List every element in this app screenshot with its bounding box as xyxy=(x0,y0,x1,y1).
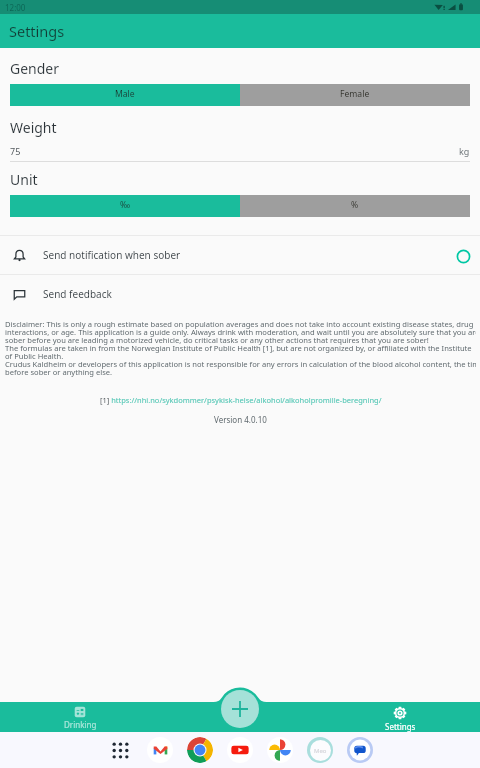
button[interactable]: Gmail xyxy=(147,737,173,763)
button[interactable]: [1] https://nhi.no/sykdommer/psykisk-hel… xyxy=(100,395,382,405)
button[interactable]: Settings xyxy=(364,702,436,732)
staticText: Send feedback xyxy=(43,287,112,301)
button[interactable]: ‰ xyxy=(10,195,240,217)
staticText: Drinking xyxy=(64,719,97,730)
staticText: Version 4.0.10 xyxy=(214,414,267,425)
staticText: Settings xyxy=(385,721,416,732)
staticText: Meo xyxy=(314,747,327,755)
staticText: ‰ xyxy=(120,199,131,211)
staticText: Weight xyxy=(10,118,57,137)
button[interactable]: Drinking xyxy=(44,702,116,732)
button[interactable]: Chrome xyxy=(187,737,213,763)
staticText: kg xyxy=(459,145,470,157)
button[interactable]: Photos xyxy=(267,737,293,763)
button[interactable]: Send feedback xyxy=(0,275,480,313)
button[interactable]: Meet xyxy=(307,737,333,763)
staticText: Send notification when sober xyxy=(43,248,181,262)
button[interactable]: All apps xyxy=(107,737,133,763)
button[interactable]: Male xyxy=(10,84,240,106)
staticText: 75 xyxy=(10,145,21,157)
staticText: Settings xyxy=(9,21,65,41)
staticText: 12:00 xyxy=(5,2,26,13)
staticText: % xyxy=(351,199,359,211)
staticText: Gender xyxy=(10,59,60,78)
button[interactable]: % xyxy=(240,195,470,217)
button[interactable]: Send notification when sober xyxy=(0,236,480,274)
staticText: Male xyxy=(115,88,135,100)
staticText: Female xyxy=(340,88,370,100)
button[interactable]: Add drink xyxy=(221,690,259,728)
button[interactable]: YouTube xyxy=(227,737,253,763)
button[interactable]: Female xyxy=(240,84,470,106)
staticText: Unit xyxy=(10,170,38,189)
staticText: Disclaimer: This is only a rough estimat… xyxy=(5,319,476,378)
button[interactable]: Messages xyxy=(347,737,373,763)
